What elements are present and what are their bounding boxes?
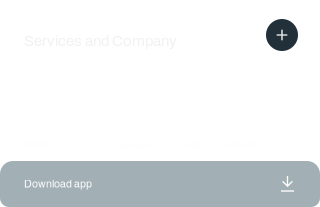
button[interactable]: Download app bbox=[0, 161, 320, 207]
staticText: Services and Company bbox=[24, 33, 177, 49]
button[interactable]: Add bbox=[266, 19, 298, 51]
staticText: Download app bbox=[24, 178, 92, 190]
